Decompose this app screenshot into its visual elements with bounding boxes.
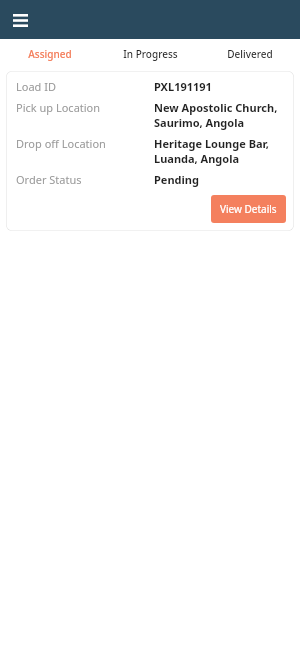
staticText: Drop off Location [16,136,154,151]
staticText: View Details [220,202,277,216]
button[interactable]: Assigned [0,39,100,68]
button[interactable]: In Progress [100,39,200,68]
button[interactable]: View Details [211,195,286,223]
button[interactable]: Load ID [6,71,294,231]
staticText: PXL191191 [154,79,212,94]
button[interactable]: Open navigation menu [7,7,33,33]
staticText: Delivered [227,47,273,61]
staticText: In Progress [123,47,178,61]
staticText: Order Status [16,172,154,187]
button[interactable]: Delivered [200,39,300,68]
staticText: Pending [154,172,199,187]
staticText: Load ID [16,79,154,94]
staticText: Pick up Location [16,100,154,115]
staticText: New Apostolic Church, Saurimo, Angola [154,100,278,130]
staticText: Assigned [28,47,72,61]
staticText: Heritage Lounge Bar, Luanda, Angola [154,136,269,166]
